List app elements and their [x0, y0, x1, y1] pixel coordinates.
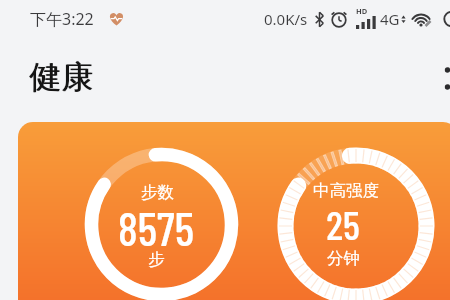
- staticText: HD: [356, 6, 368, 16]
- staticText: 25: [326, 200, 360, 248]
- staticText: 健康: [30, 57, 94, 97]
- staticText: 4G: [380, 9, 400, 29]
- staticText: 8575: [118, 200, 194, 255]
- staticText: 分钟: [327, 248, 360, 269]
- button[interactable]: [438, 60, 450, 96]
- staticText: 0.0K/s: [264, 9, 308, 29]
- button[interactable]: [18, 122, 450, 300]
- staticText: 下午3:22: [30, 8, 94, 30]
- staticText: 步数: [141, 182, 174, 203]
- staticText: 健康: [29, 57, 93, 97]
- staticText: 中高强度: [313, 180, 379, 201]
- staticText: 步: [148, 249, 165, 270]
